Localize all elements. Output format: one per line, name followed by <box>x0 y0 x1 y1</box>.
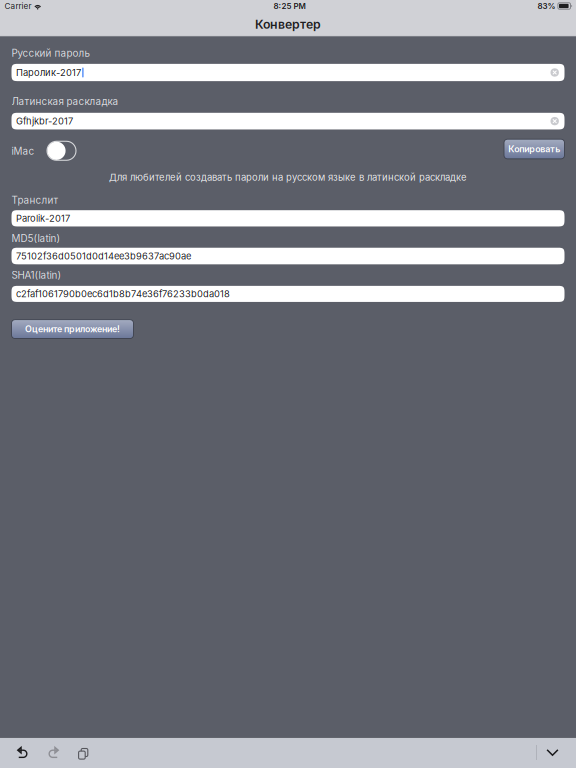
button[interactable]: Parolik-2017 <box>11 210 564 226</box>
staticText: MD5(latin) <box>11 232 60 244</box>
staticText: c2faf1061790b0ec6d1b8b74e36f76233b0da018 <box>16 288 230 299</box>
button[interactable]: Paste <box>69 737 100 768</box>
staticText: Gfhjkbr-2017 <box>16 115 73 127</box>
staticText: Carrier <box>5 1 32 11</box>
staticText: SHA1(latin) <box>11 269 61 281</box>
button[interactable]: Оцените приложение! <box>11 320 133 338</box>
button[interactable]: Undo <box>7 737 38 768</box>
staticText: Parolik-2017 <box>16 213 70 224</box>
button[interactable]: Redo <box>38 737 69 768</box>
staticText: Конвертер <box>255 17 321 32</box>
staticText: 75102f36d0501d0d14ee3b9637ac90ae <box>16 250 191 262</box>
staticText: Латинская раскладка <box>11 95 118 107</box>
button[interactable]: Hide keyboard <box>537 737 568 768</box>
staticText: 83% <box>537 1 555 11</box>
staticText: Транслит <box>11 194 58 206</box>
button[interactable]: Копировать <box>504 139 564 159</box>
staticText: Для любителей создавать пароли на русско… <box>109 172 467 183</box>
staticText: Паролик-2017 <box>16 67 81 78</box>
staticText: Русский пароль <box>11 47 90 59</box>
staticText: iMac <box>11 145 34 157</box>
staticText: Оцените приложение! <box>25 324 120 334</box>
button[interactable]: c2faf1061790b0ec6d1b8b74e36f76233b0da018 <box>11 286 564 302</box>
button[interactable]: Паролик-2017 <box>11 64 564 81</box>
button[interactable]: Gfhjkbr-2017 <box>11 113 564 129</box>
button[interactable]: 75102f36d0501d0d14ee3b9637ac90ae <box>11 248 564 264</box>
staticText: 8:25 PM <box>274 1 306 11</box>
button[interactable]: iMac toggle <box>47 141 76 160</box>
staticText: Копировать <box>508 144 560 154</box>
